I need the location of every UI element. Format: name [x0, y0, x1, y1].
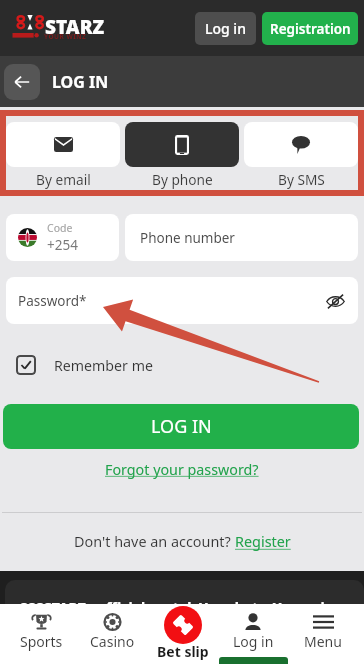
staticText: LOG IN	[151, 414, 212, 439]
staticText: By SMS	[278, 170, 325, 189]
button[interactable]: Sports	[6, 604, 77, 664]
button[interactable]: LOG IN	[3, 404, 359, 449]
staticText: STARZ	[45, 14, 105, 40]
staticText: By email	[36, 170, 91, 189]
staticText: Code	[47, 221, 73, 235]
button[interactable]: By email	[6, 122, 120, 189]
staticText: +254	[47, 236, 78, 254]
staticText: By phone	[152, 170, 213, 189]
button[interactable]: Register	[235, 532, 291, 552]
staticText: Phone number	[140, 229, 235, 247]
staticText: Casino	[90, 632, 135, 651]
staticText: YOUR WINZ	[44, 32, 87, 41]
button[interactable]: Log in	[218, 604, 288, 664]
button[interactable]: By phone	[125, 122, 239, 189]
staticText: Bet slip	[157, 642, 209, 661]
button[interactable]: Log in	[195, 12, 256, 45]
button[interactable]: Code	[6, 214, 119, 261]
staticText: Log in	[205, 19, 246, 38]
button[interactable]: STARZ	[4, 12, 100, 44]
staticText: Don't have an account?	[74, 532, 235, 552]
button[interactable]: Remember me	[16, 355, 153, 375]
staticText: LOG IN	[52, 71, 109, 93]
staticText: Sports	[20, 632, 63, 651]
button[interactable]: Show password	[324, 290, 346, 312]
staticText: Password*	[18, 292, 87, 310]
button[interactable]: Back	[4, 64, 40, 100]
button[interactable]: Password*	[6, 277, 358, 324]
button[interactable]: By SMS	[244, 122, 358, 189]
button[interactable]: Phone number	[125, 214, 358, 261]
button[interactable]: Registration	[262, 12, 358, 45]
button[interactable]: Forgot your password?	[105, 460, 259, 479]
button[interactable]: Menu	[288, 604, 358, 664]
staticText: Menu	[304, 632, 342, 651]
staticText: Remember me	[54, 356, 153, 375]
staticText: Log in	[233, 632, 274, 651]
staticText: Registration	[270, 20, 351, 38]
staticText: 888STARZ - official portal. Your bets. Y…	[20, 598, 345, 617]
button[interactable]: Bet slip	[148, 604, 218, 664]
button[interactable]: Casino	[77, 604, 148, 664]
